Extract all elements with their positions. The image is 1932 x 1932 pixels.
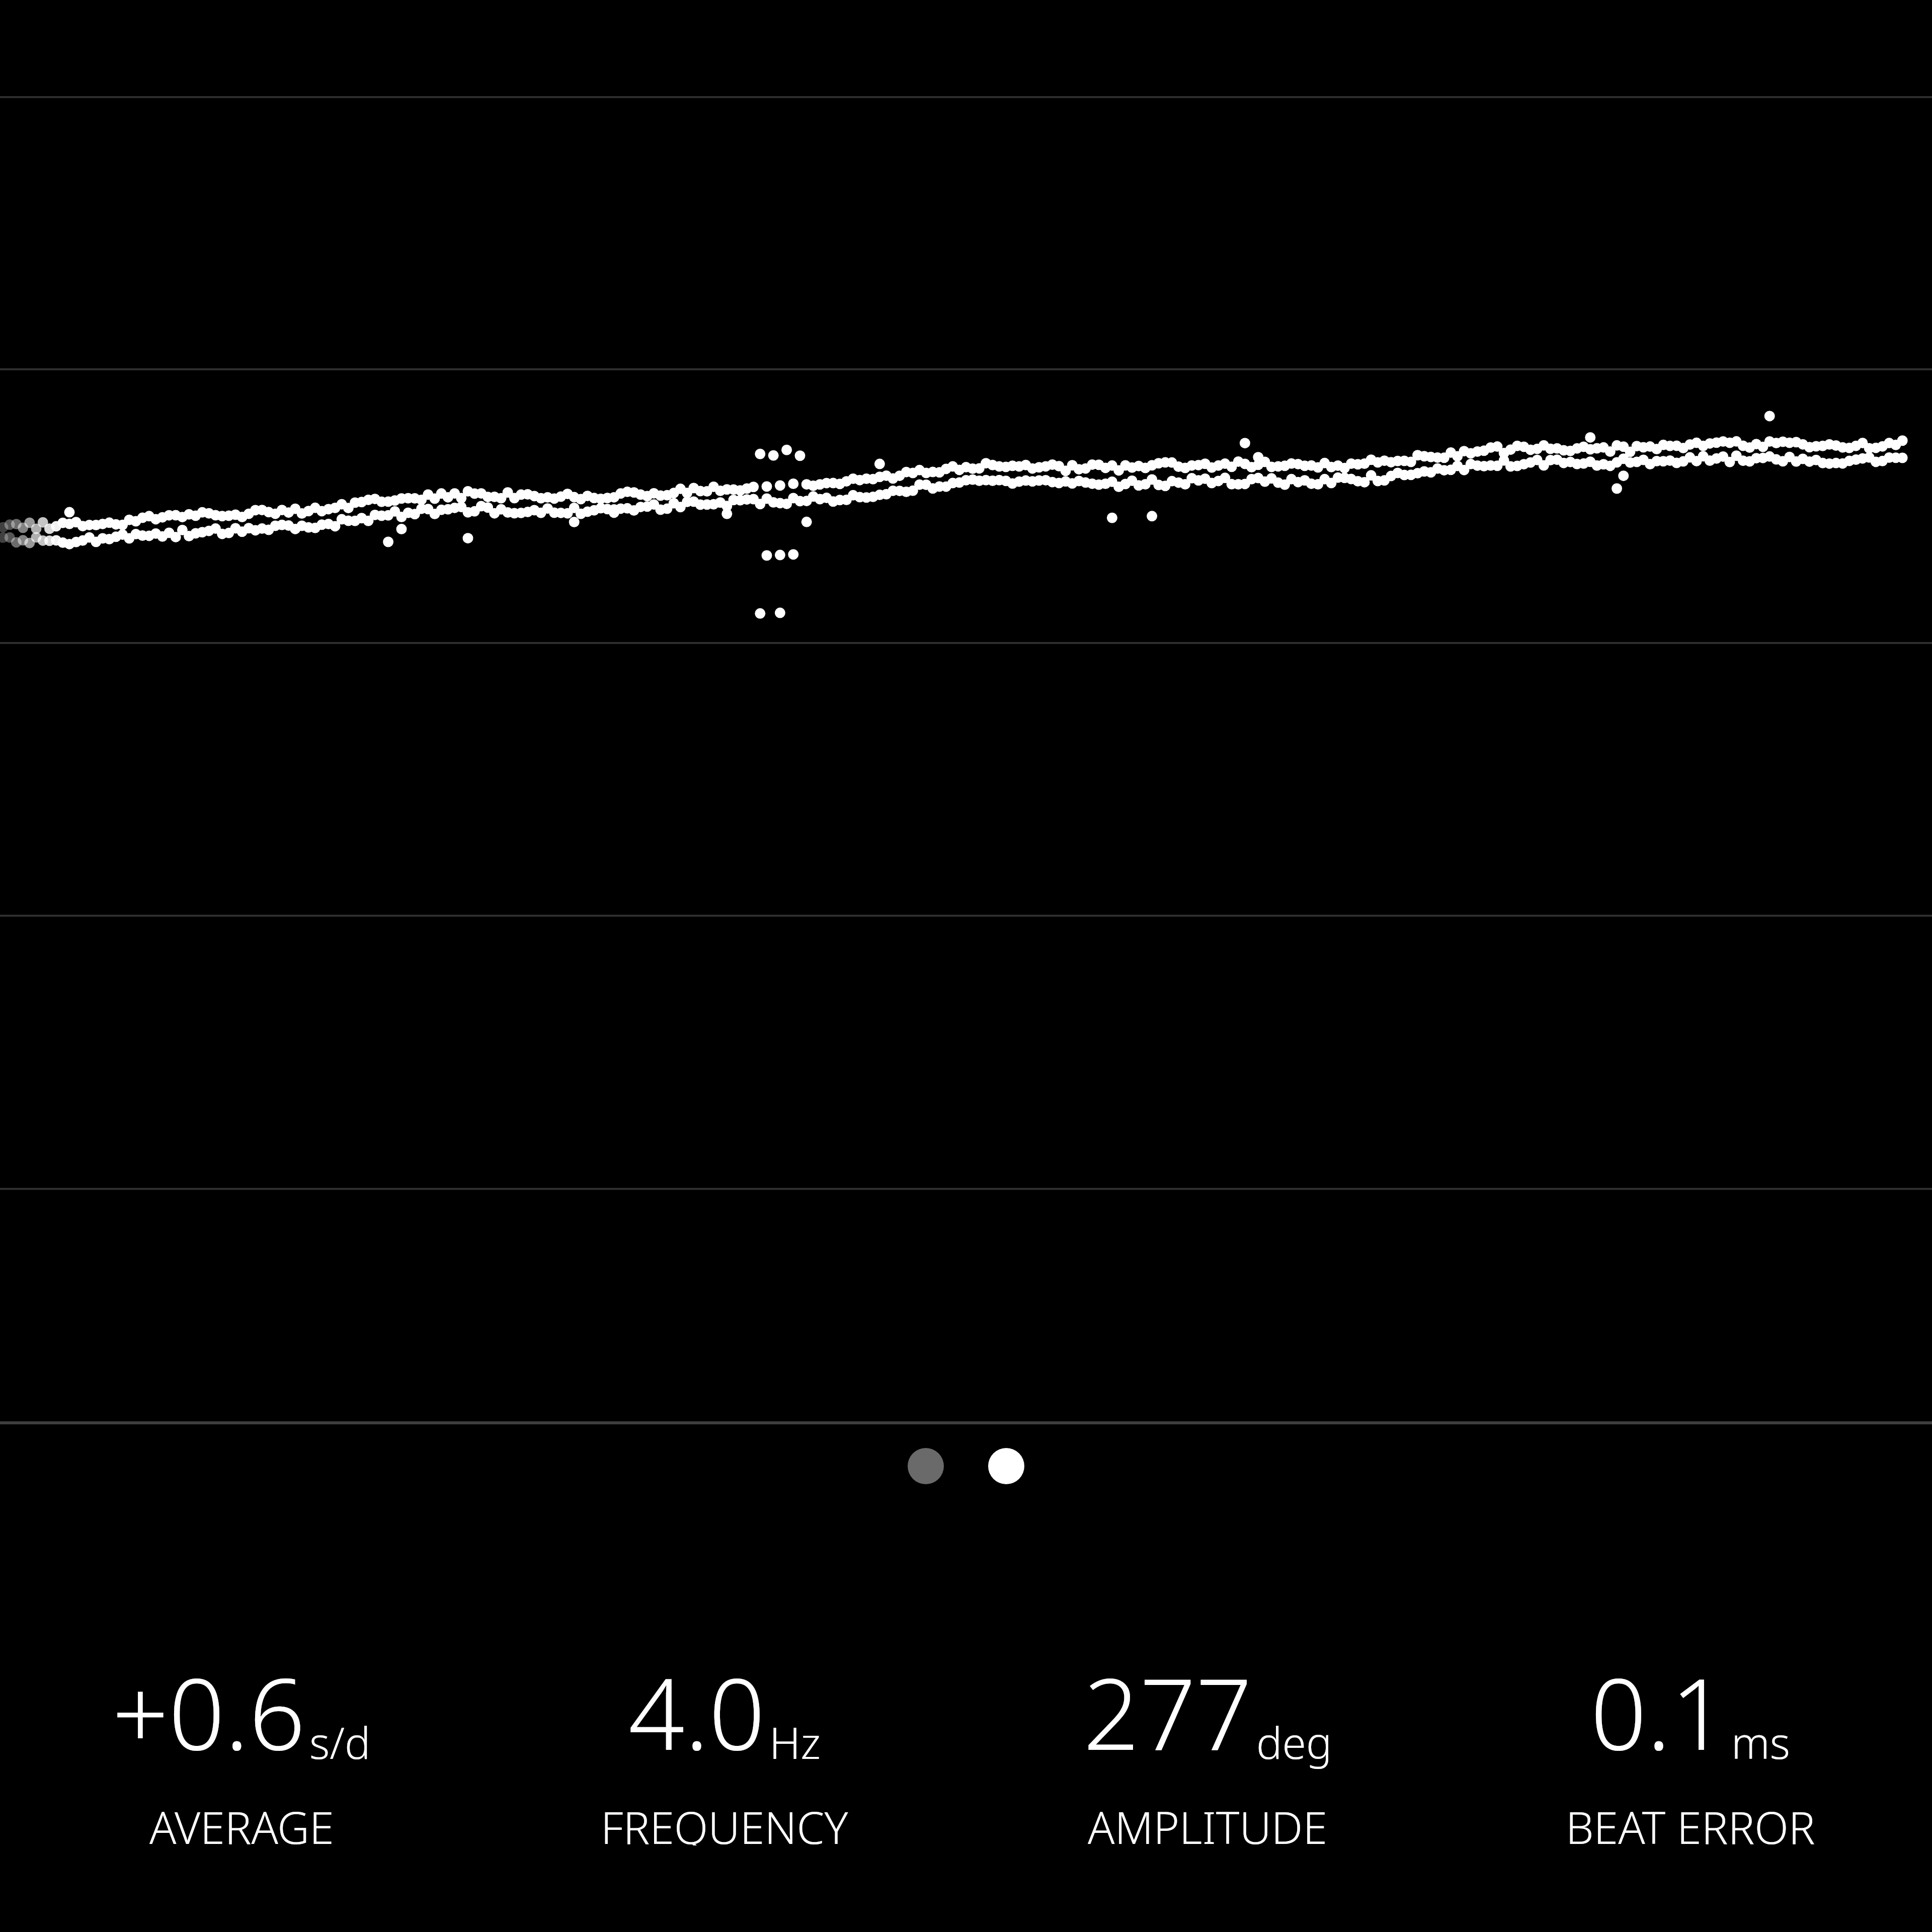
button[interactable]: 4.0 [483,1644,966,1845]
staticText: deg [1256,1713,1332,1772]
button[interactable]: Page 2 of 2 [902,1441,1030,1491]
staticText: 277 [1083,1644,1252,1779]
button[interactable]: 0.1 [1449,1644,1932,1845]
staticText: 0.1 [1590,1644,1727,1779]
staticText: BEAT ERROR [1566,1797,1815,1845]
staticText: AVERAGE [149,1797,334,1845]
staticText: s/d [309,1713,371,1772]
staticText: 4.0 [628,1644,765,1779]
button[interactable]: 277 [966,1644,1449,1845]
staticText: Hz [769,1713,821,1772]
staticText: ms [1731,1713,1791,1772]
staticText: +0.6 [112,1644,305,1779]
staticText: FREQUENCY [601,1797,848,1845]
button[interactable]: +0.6 [0,1644,483,1845]
staticText: AMPLITUDE [1088,1797,1328,1845]
